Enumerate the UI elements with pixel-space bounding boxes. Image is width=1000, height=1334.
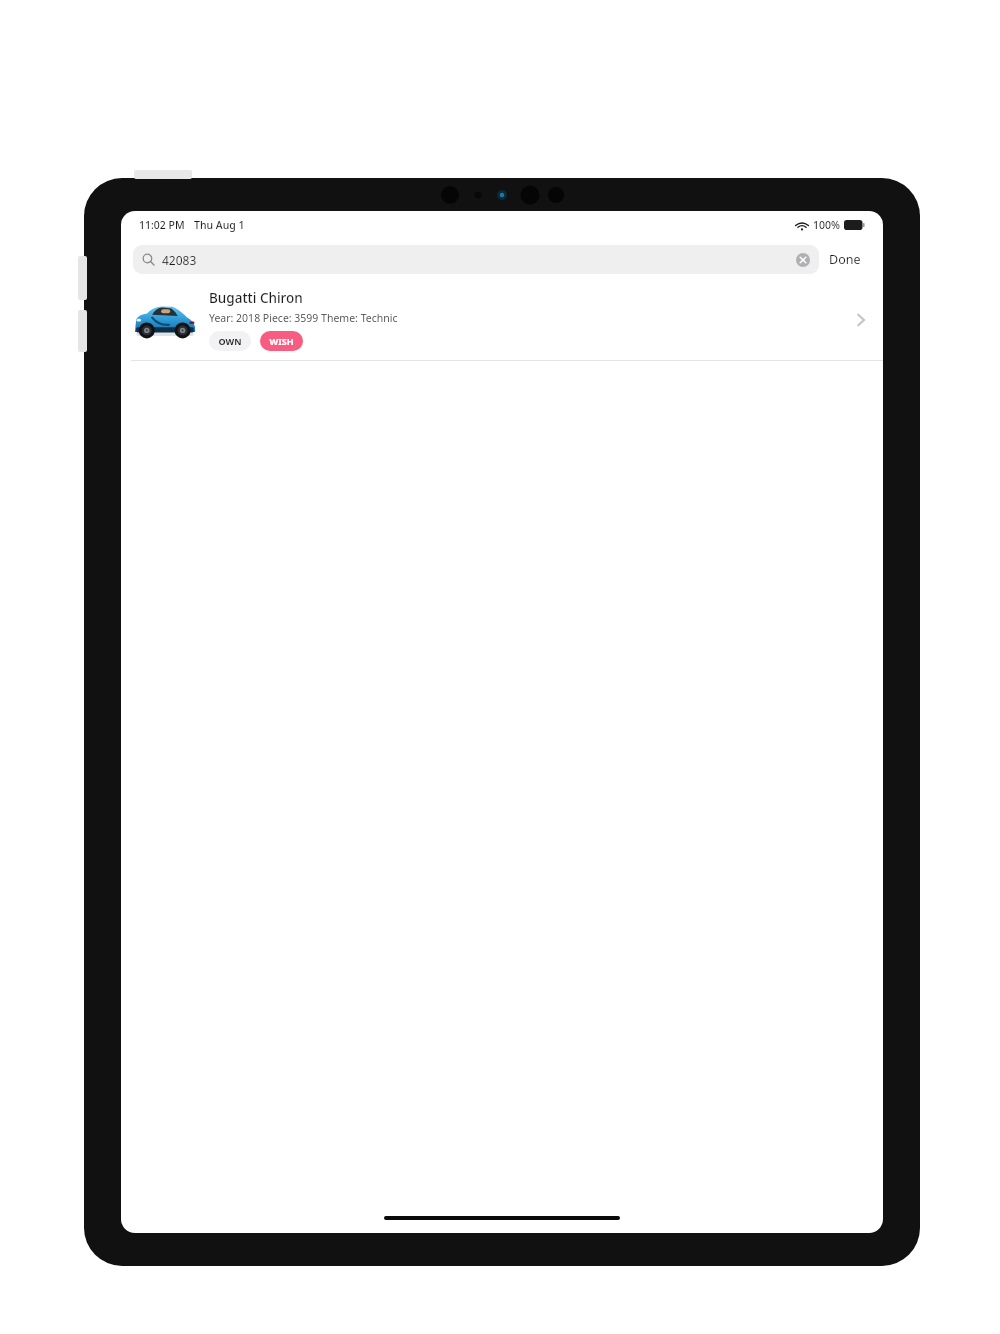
button[interactable]: Bugatti Chiron set image xyxy=(121,279,883,361)
staticText: Year: 2018 Piece: 3599 Theme: Technic xyxy=(209,311,398,325)
staticText: 42083 xyxy=(162,252,197,268)
other: Open details xyxy=(851,310,871,330)
button[interactable]: Clear search xyxy=(796,253,810,267)
staticText: 11:02 PM xyxy=(139,218,185,232)
staticText: WISH xyxy=(269,335,294,347)
staticText: Done xyxy=(829,251,861,268)
staticText: Thu Aug 1 xyxy=(194,218,245,232)
staticText: OWN xyxy=(218,335,242,347)
staticText: Bugatti Chiron xyxy=(209,289,303,307)
button[interactable]: Done xyxy=(819,246,871,273)
button[interactable]: OWN xyxy=(209,331,251,351)
button[interactable]: 42083 xyxy=(133,245,819,274)
button[interactable]: WISH xyxy=(260,331,303,351)
other: Bugatti Chiron set image xyxy=(133,300,197,340)
staticText: 100% xyxy=(813,218,840,232)
